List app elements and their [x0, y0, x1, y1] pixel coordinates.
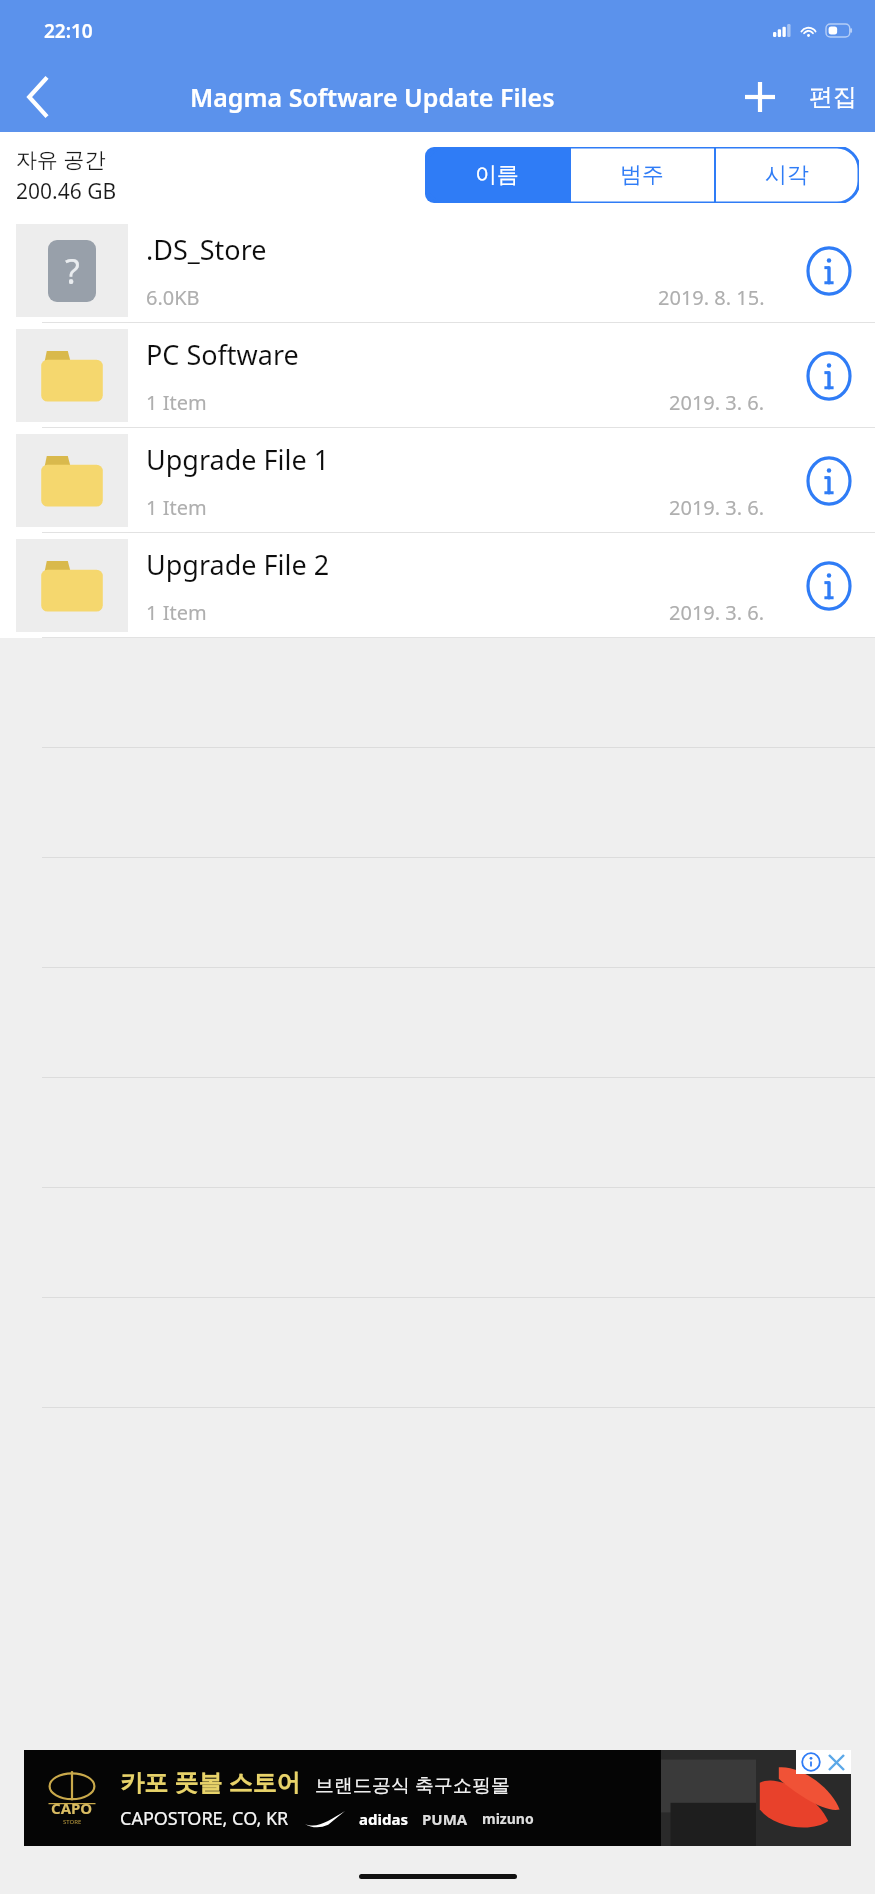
- staticText: PC Software: [146, 336, 299, 373]
- button[interactable]: 시각: [714, 147, 859, 203]
- staticText: 200.46 GB: [16, 177, 117, 206]
- button[interactable]: Add: [729, 61, 791, 132]
- staticText: CAPO: [51, 1798, 93, 1818]
- button[interactable]: Close ad: [826, 1752, 846, 1772]
- button[interactable]: 편집: [791, 61, 875, 132]
- button[interactable]: Info: [783, 428, 875, 533]
- button[interactable]: 범주: [569, 147, 714, 203]
- staticText: 1 Item: [146, 494, 207, 521]
- button[interactable]: Back: [0, 61, 76, 132]
- staticText: adidas: [359, 1809, 408, 1829]
- staticText: 편집: [809, 82, 857, 112]
- button[interactable]: ?: [0, 218, 875, 323]
- staticText: CAPOSTORE, CO, KR: [120, 1806, 289, 1831]
- button[interactable]: 이름: [425, 147, 569, 203]
- staticText: 2019. 8. 15.: [658, 284, 765, 311]
- button[interactable]: Upgrade File 2: [0, 533, 875, 638]
- staticText: ?: [65, 248, 80, 294]
- staticText: 2019. 3. 6.: [669, 494, 765, 521]
- staticText: 자유 공간: [16, 145, 106, 174]
- button[interactable]: Info: [783, 218, 875, 323]
- staticText: 1 Item: [146, 599, 207, 626]
- staticText: 시각: [765, 161, 809, 189]
- staticText: 6.0KB: [146, 284, 200, 311]
- staticText: 22:10: [44, 18, 93, 44]
- staticText: Magma Software Update Files: [190, 80, 555, 114]
- staticText: 브랜드공식 축구쇼핑몰: [315, 1772, 510, 1798]
- button[interactable]: Info: [783, 323, 875, 428]
- staticText: 이름: [475, 161, 519, 189]
- button[interactable]: Upgrade File 1: [0, 428, 875, 533]
- staticText: 2019. 3. 6.: [669, 389, 765, 416]
- staticText: 1 Item: [146, 389, 207, 416]
- staticText: 카포 풋볼 스토어: [120, 1765, 301, 1798]
- staticText: 범주: [620, 161, 664, 189]
- button[interactable]: Info: [783, 533, 875, 638]
- button[interactable]: Advertisement: [24, 1750, 851, 1846]
- button[interactable]: PC Software: [0, 323, 875, 428]
- staticText: STORE: [63, 1818, 82, 1826]
- staticText: Upgrade File 1: [146, 441, 330, 478]
- staticText: mizuno: [482, 1809, 534, 1828]
- staticText: Upgrade File 2: [146, 546, 330, 583]
- staticText: PUMA: [422, 1809, 468, 1829]
- staticText: 2019. 3. 6.: [669, 599, 765, 626]
- staticText: .DS_Store: [146, 231, 267, 268]
